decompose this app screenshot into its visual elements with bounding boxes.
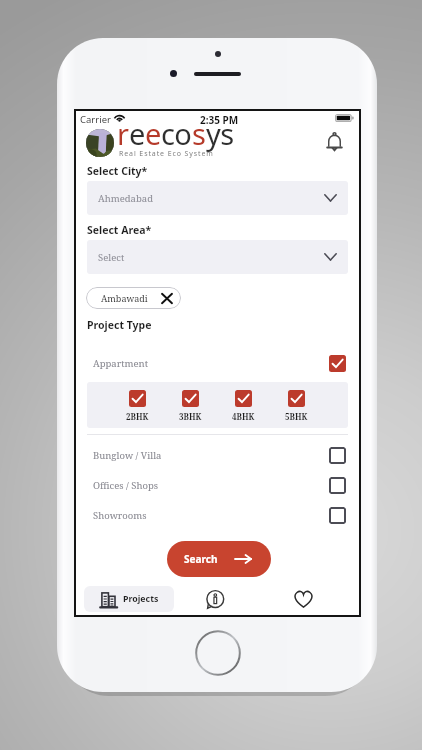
staticText: 5BHK: [285, 411, 308, 422]
button[interactable]: Bunglow / Villa: [87, 442, 348, 468]
staticText: 4BHK: [232, 411, 255, 422]
staticText: Carrier: [80, 113, 111, 126]
staticText: Bunglow / Villa: [93, 449, 162, 462]
button[interactable]: 3BHK: [170, 390, 210, 422]
button[interactable]: 4BHK: [223, 390, 263, 422]
button[interactable]: Ambawadi: [86, 287, 181, 309]
button[interactable]: Appartment: [87, 350, 348, 376]
button[interactable]: Ahmedabad: [87, 181, 348, 215]
staticText: s: [192, 114, 206, 153]
button[interactable]: Information: [202, 586, 228, 612]
staticText: 2BHK: [126, 411, 149, 422]
button[interactable]: Projects: [84, 586, 174, 612]
staticText: Ambawadi: [101, 292, 148, 304]
button[interactable]: Showrooms: [87, 502, 348, 528]
staticText: Showrooms: [93, 509, 147, 522]
staticText: Real Estate Eco System: [119, 149, 214, 159]
staticText: e: [145, 114, 161, 153]
staticText: co: [161, 114, 192, 153]
button[interactable]: 2BHK: [117, 390, 157, 422]
staticText: Ahmedabad: [98, 192, 153, 205]
staticText: Select City*: [87, 164, 148, 178]
button[interactable]: Offices / Shops: [87, 472, 348, 498]
button[interactable]: Favourites: [290, 586, 316, 612]
staticText: Projects: [123, 593, 159, 605]
staticText: 3BHK: [179, 411, 202, 422]
staticText: Appartment: [93, 357, 149, 370]
staticText: Search: [184, 552, 218, 566]
button[interactable]: 5BHK: [276, 390, 316, 422]
staticText: 2:35 PM: [200, 113, 239, 127]
staticText: Select Area*: [87, 223, 152, 237]
staticText: Offices / Shops: [93, 479, 159, 492]
staticText: e: [129, 114, 145, 153]
button[interactable]: Search: [167, 541, 271, 577]
staticText: r: [117, 114, 129, 153]
staticText: Select: [98, 251, 125, 264]
staticText: ys: [206, 114, 234, 153]
button[interactable]: Notifications: [321, 129, 347, 155]
button[interactable]: Select: [87, 240, 348, 274]
staticText: Project Type: [87, 318, 152, 332]
